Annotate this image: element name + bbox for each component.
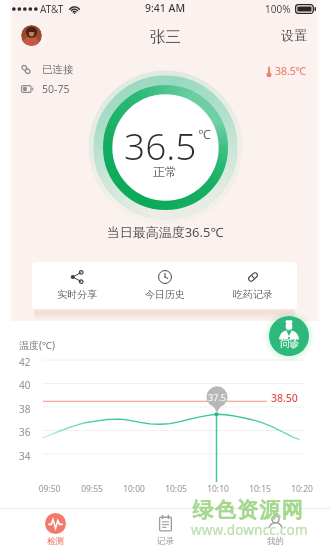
staticText: 09:55	[71, 483, 113, 495]
staticText: 问诊	[280, 338, 299, 350]
staticText: 38	[19, 402, 31, 416]
staticText: 36.5	[124, 120, 197, 170]
button[interactable]: 实时分享	[32, 262, 121, 309]
button[interactable]: 检测	[0, 508, 110, 550]
button[interactable]: 今日历史	[121, 262, 209, 309]
staticText: 34	[19, 449, 31, 463]
button[interactable]: 记录	[110, 508, 220, 550]
button[interactable]: 吃药记录	[209, 262, 297, 309]
staticText: 温度(℃)	[19, 338, 55, 352]
staticText: 10:15	[239, 483, 281, 495]
staticText: 38.5℃	[275, 64, 307, 78]
staticText: 我的	[267, 536, 284, 547]
staticText: ℃	[198, 125, 211, 143]
staticText: 38.50	[271, 391, 298, 405]
staticText: 100%	[265, 2, 291, 16]
staticText: 9:41 AM	[145, 1, 186, 15]
staticText: 张三	[150, 27, 181, 47]
staticText: 设置	[281, 27, 307, 43]
staticText: 42	[19, 355, 31, 369]
button[interactable]: 用户头像	[21, 25, 42, 46]
button[interactable]: 设置	[277, 22, 311, 48]
staticText: 10:05	[155, 483, 197, 495]
staticText: 吃药记录	[233, 288, 273, 301]
staticText: 实时分享	[57, 288, 97, 301]
staticText: 绿色资源网	[192, 497, 303, 523]
staticText: AT&T	[40, 2, 64, 16]
staticText: 检测	[47, 536, 64, 547]
staticText: 记录	[157, 536, 174, 547]
staticText: 10:10	[197, 483, 239, 495]
button[interactable]: 问诊	[269, 316, 309, 356]
staticText: www.downcc.com	[191, 521, 308, 539]
staticText: 09:50	[28, 483, 71, 495]
staticText: 37.5	[208, 391, 226, 403]
staticText: 当日最高温度36.5℃	[0, 223, 330, 241]
staticText: 10:20	[281, 483, 323, 495]
staticText: 50-75	[42, 82, 70, 96]
staticText: 36	[19, 425, 31, 439]
staticText: 已连接	[42, 63, 74, 76]
button[interactable]: 我的	[220, 508, 330, 550]
staticText: 40	[19, 378, 31, 392]
staticText: 10:00	[113, 483, 155, 495]
staticText: 今日历史	[145, 288, 185, 301]
staticText: 正常	[153, 164, 177, 179]
